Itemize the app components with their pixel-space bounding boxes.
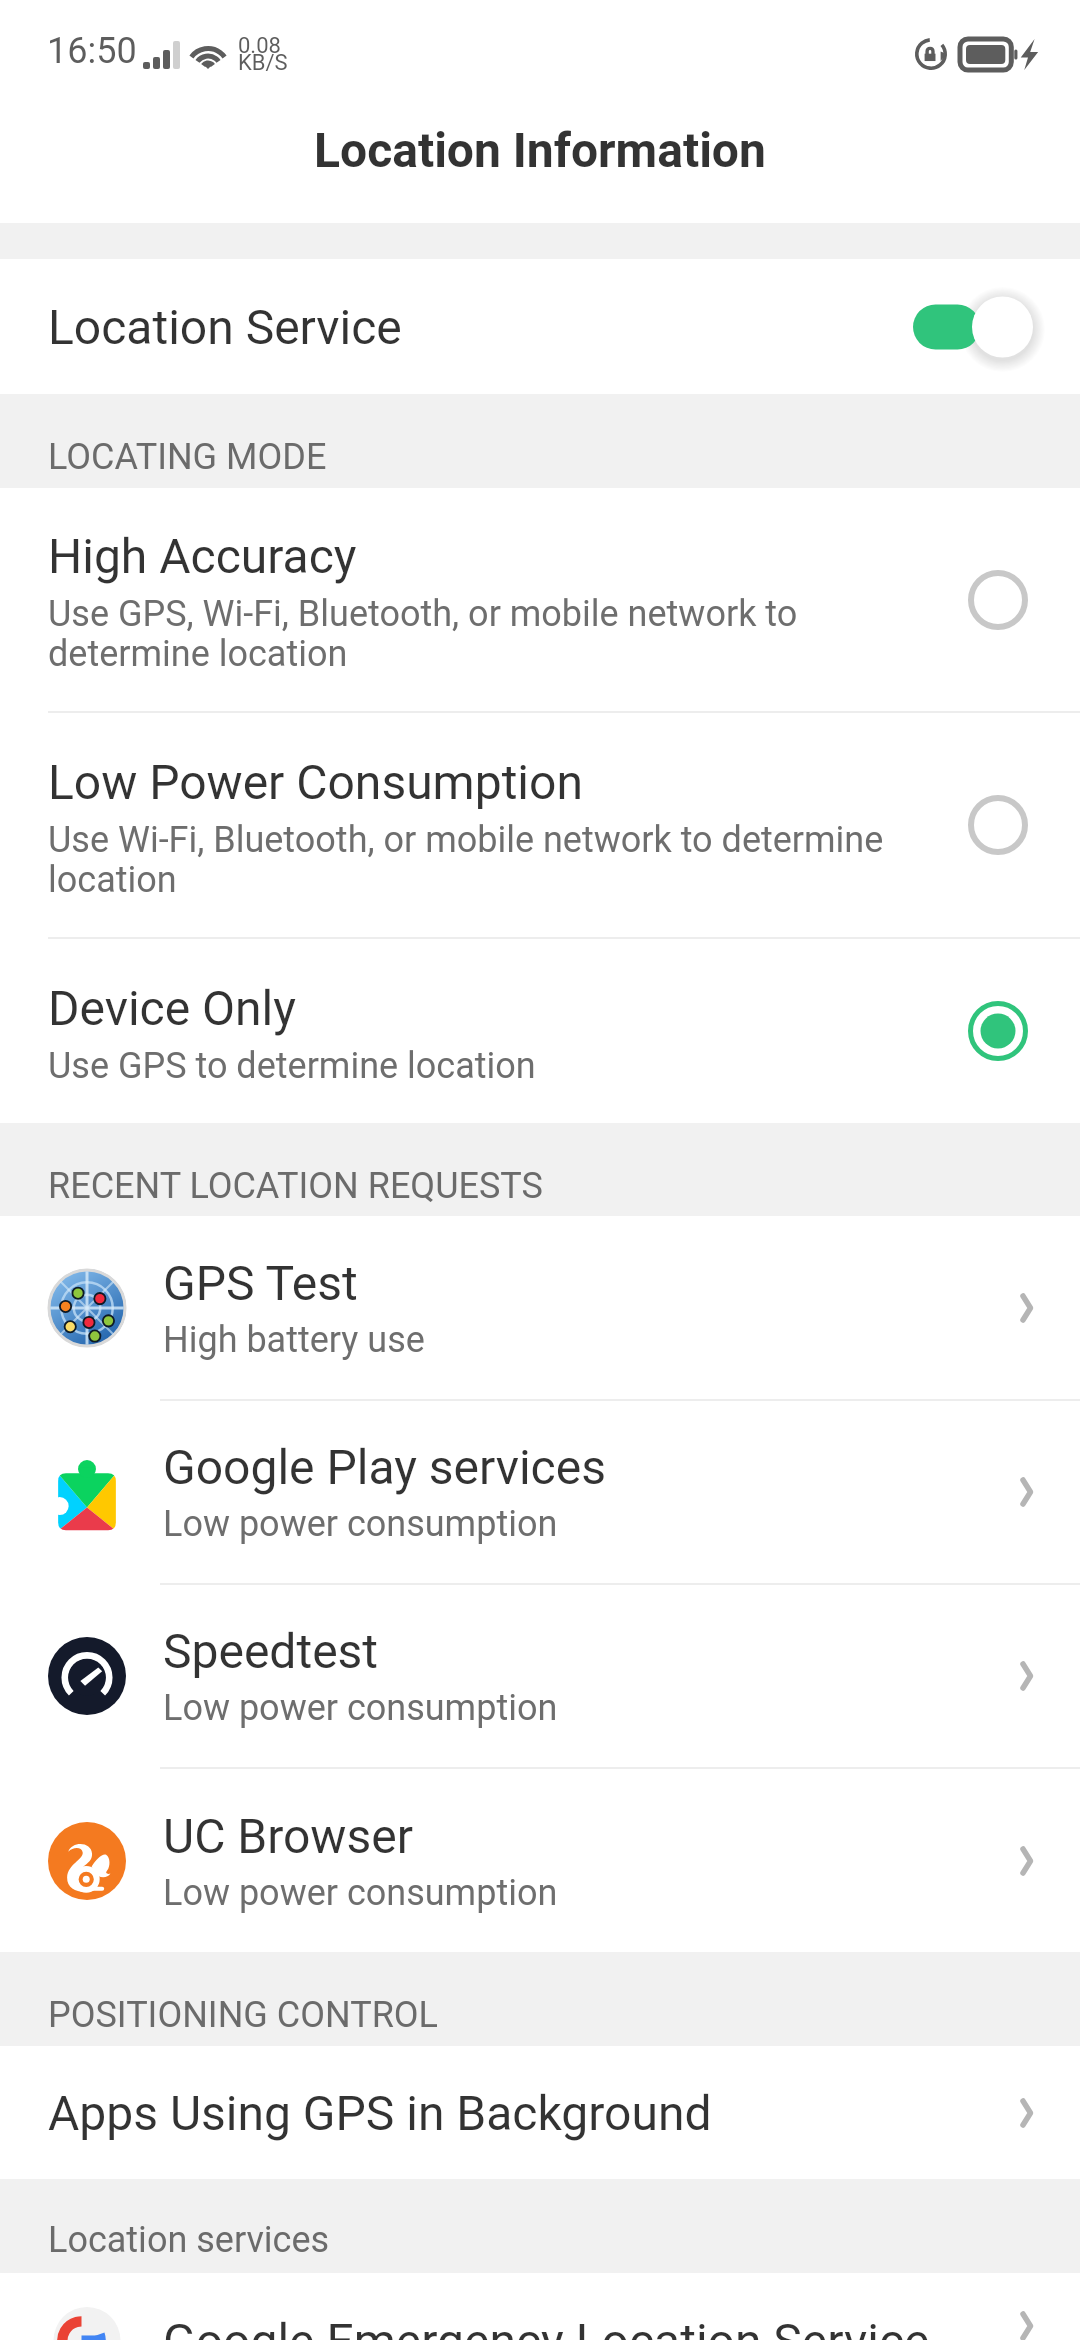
staticText: High battery use [163, 1319, 425, 1361]
button[interactable]: High Accuracy [0, 488, 1080, 711]
staticText: 16:50 [47, 30, 137, 72]
staticText: Location services [48, 2219, 330, 2261]
button[interactable]: Google Play services [0, 1401, 1080, 1583]
other: Speedtest [1007, 1657, 1045, 1695]
staticText: 0.08 KB/S [238, 33, 288, 76]
staticText: Location Information [314, 122, 766, 178]
button[interactable]: Low Power Consumption [0, 713, 1080, 937]
other: Battery [960, 39, 1017, 70]
button[interactable]: Google Emergency Location Service [0, 2273, 1080, 2340]
staticText: Use GPS to determine location [48, 1045, 536, 1087]
staticText: Speedtest [163, 1623, 379, 1679]
staticText: UC Browser [163, 1808, 413, 1864]
staticText: GPS Test [163, 1255, 358, 1311]
button[interactable]: Speedtest [0, 1585, 1080, 1767]
staticText: POSITIONING CONTROL [48, 1994, 438, 2036]
button[interactable]: UC Browser [0, 1769, 1080, 1952]
staticText: Google Play services [163, 1439, 606, 1495]
button[interactable]: Device Only [0, 939, 1080, 1123]
staticText: Low Power Consumption [48, 754, 583, 810]
other: Device Only [968, 1001, 1028, 1061]
other: UC Browser [1007, 1842, 1045, 1880]
staticText: Use GPS, Wi-Fi, Bluetooth, or mobile net… [48, 593, 798, 675]
staticText: Google Emergency Location Service [163, 2313, 930, 2340]
staticText: Device Only [48, 980, 296, 1036]
staticText: Low power consumption [163, 1503, 558, 1545]
other: Low Power Consumption [968, 795, 1028, 855]
button[interactable]: GPS Test [0, 1216, 1080, 1399]
staticText: Low power consumption [163, 1687, 558, 1729]
staticText: RECENT LOCATION REQUESTS [48, 1165, 543, 1207]
staticText: Apps Using GPS in Background [48, 2085, 712, 2141]
staticText: High Accuracy [48, 528, 357, 584]
button[interactable]: Location Service [0, 259, 1080, 394]
other: GPS Test [1007, 1289, 1045, 1327]
staticText: LOCATING MODE [48, 436, 327, 478]
other: Rotation lock [915, 38, 947, 70]
staticText: Low power consumption [163, 1872, 558, 1914]
staticText: Use Wi-Fi, Bluetooth, or mobile network … [48, 819, 884, 901]
button[interactable]: Apps Using GPS in Background [0, 2046, 1080, 2179]
other: High Accuracy [968, 570, 1028, 630]
staticText: Location Service [48, 299, 402, 355]
other: Google Play services [1007, 1473, 1045, 1511]
